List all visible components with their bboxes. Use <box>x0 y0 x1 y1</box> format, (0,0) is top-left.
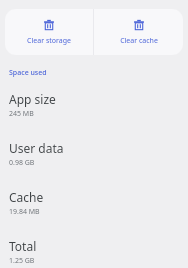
button[interactable]: User data <box>0 138 188 170</box>
staticText: Total <box>9 238 37 254</box>
staticText: App size <box>9 91 56 107</box>
staticText: 19.84 MB <box>9 207 40 217</box>
staticText: User data <box>9 140 64 156</box>
button[interactable]: Clear cache <box>94 9 183 55</box>
button[interactable]: Clear storage <box>5 9 93 55</box>
staticText: Cache <box>9 189 44 205</box>
staticText: 245 MB <box>9 109 34 119</box>
staticText: 1.25 GB <box>9 256 35 266</box>
staticText: Clear cache <box>120 36 158 46</box>
button[interactable]: Total <box>0 236 188 268</box>
staticText: 0.98 GB <box>9 158 35 168</box>
button[interactable]: App size <box>0 89 188 121</box>
staticText: Clear storage <box>27 36 71 46</box>
staticText: Space used <box>9 68 47 78</box>
button[interactable]: Cache <box>0 187 188 219</box>
